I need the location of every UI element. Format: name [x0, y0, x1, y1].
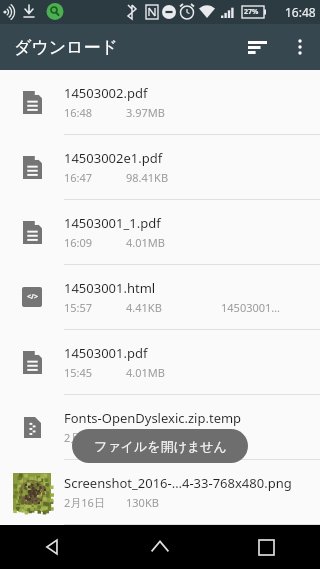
staticText: 16:48	[64, 105, 93, 120]
staticText: 4.01MB	[126, 365, 165, 380]
staticText: 14503002.pdf	[64, 84, 148, 102]
button[interactable]: Back	[0, 525, 106, 569]
staticText: 27%	[244, 7, 259, 17]
staticText: 14503001.html	[64, 279, 156, 297]
staticText: 16:09	[64, 235, 93, 250]
button[interactable]: </>	[0, 265, 320, 330]
staticText: ダウンロード	[14, 37, 118, 58]
staticText: Fonts-OpenDyslexic.zip.temp	[64, 409, 242, 427]
staticText: 14503001…	[221, 300, 281, 315]
button[interactable]: Recent apps	[213, 525, 320, 569]
button[interactable]: 14503002e1.pdf	[0, 135, 320, 200]
staticText: 98.41KB	[126, 170, 169, 185]
staticText: 3.97MB	[126, 105, 165, 120]
staticText: 15:45	[64, 365, 93, 380]
staticText: 14503001.pdf	[64, 344, 148, 362]
button[interactable]: Screenshot_2016-…4-33-768x480.png	[0, 460, 320, 525]
staticText: ファイルを開けません	[94, 438, 227, 454]
button[interactable]: 14503001_1.pdf	[0, 200, 320, 265]
staticText: 2月18日	[64, 430, 105, 445]
staticText: 15:57	[64, 300, 93, 315]
staticText: Screenshot_2016-…4-33-768x480.png	[64, 474, 292, 492]
staticText: </>	[27, 292, 38, 302]
staticText: 14503001_1.pdf	[64, 214, 161, 232]
staticText: 16:48	[285, 4, 316, 20]
button[interactable]: Home	[106, 525, 213, 569]
staticText: 2月16日	[64, 495, 105, 510]
staticText: 130KB	[126, 495, 159, 510]
button[interactable]: Sort	[236, 25, 280, 69]
staticText: 14503002e1.pdf	[64, 149, 163, 167]
button[interactable]: 14503001.pdf	[0, 330, 320, 395]
button[interactable]: Fonts-OpenDyslexic.zip.temp	[0, 395, 320, 460]
staticText: 4.41KB	[126, 300, 162, 315]
staticText: 169KB	[126, 430, 159, 445]
staticText: 16:47	[64, 170, 93, 185]
button[interactable]: 14503002.pdf	[0, 70, 320, 135]
staticText: 4.01MB	[126, 235, 165, 250]
button[interactable]: More options	[280, 27, 320, 67]
